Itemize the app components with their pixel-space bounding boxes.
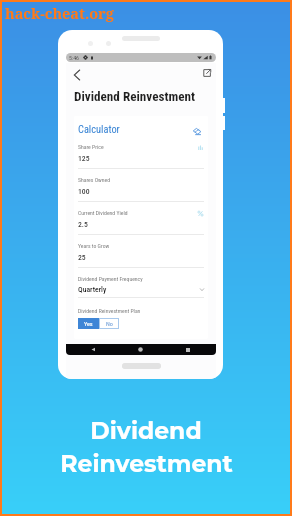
- staticText: Dividend Reinvestment Plan: [78, 308, 141, 315]
- staticText: hack-cheat.org: [5, 3, 114, 23]
- staticText: 125: [78, 154, 90, 163]
- button[interactable]: Back: [68, 66, 85, 83]
- button[interactable]: No: [100, 319, 118, 328]
- staticText: 100: [78, 187, 90, 196]
- staticText: 2.5: [78, 220, 88, 229]
- staticText: 5:46: [69, 55, 80, 61]
- staticText: Current Dividend Yield: [78, 210, 128, 217]
- staticText: Share Price: [78, 144, 104, 151]
- staticText: Calculator: [78, 123, 120, 135]
- button[interactable]: Clear: [191, 126, 202, 137]
- staticText: Dividend Payment Frequency: [78, 276, 143, 283]
- staticText: No: [106, 320, 113, 327]
- staticText: Years to Grow: [78, 243, 110, 250]
- staticText: Shares Owned: [78, 177, 111, 184]
- staticText: Quarterly: [78, 285, 107, 294]
- staticText: Dividend: [90, 416, 202, 445]
- staticText: Dividend Reinvestment: [74, 89, 196, 104]
- button[interactable]: Yes: [78, 318, 99, 329]
- staticText: 25: [78, 253, 86, 262]
- button[interactable]: Open in browser: [198, 64, 215, 81]
- staticText: Reinvestment: [60, 449, 233, 478]
- staticText: Yes: [84, 320, 93, 327]
